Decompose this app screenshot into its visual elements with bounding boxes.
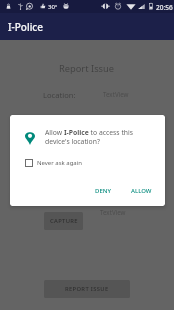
staticText: REPORT ISSUE: [65, 285, 109, 293]
staticText: TextView: [103, 90, 129, 98]
button[interactable]: DENY: [91, 183, 115, 199]
staticText: Report Issue: [59, 62, 115, 75]
staticText: Location:: [43, 90, 76, 100]
staticText: CAPTURE: [50, 217, 78, 225]
staticText: Allow I-Police to access this device's l…: [45, 128, 157, 146]
staticText: DENY: [95, 187, 111, 195]
staticText: TextView: [100, 208, 126, 216]
staticText: 20:56: [156, 3, 173, 12]
staticText: Never ask again: [37, 159, 82, 167]
button[interactable]: ALLOW: [127, 183, 156, 199]
button[interactable]: CAPTURE: [44, 212, 83, 230]
staticText: I-Police: [8, 20, 44, 34]
staticText: ALLOW: [131, 187, 152, 195]
button[interactable]: Never ask again: [25, 159, 82, 167]
staticText: 30°: [48, 3, 58, 11]
button[interactable]: REPORT ISSUE: [44, 280, 130, 298]
